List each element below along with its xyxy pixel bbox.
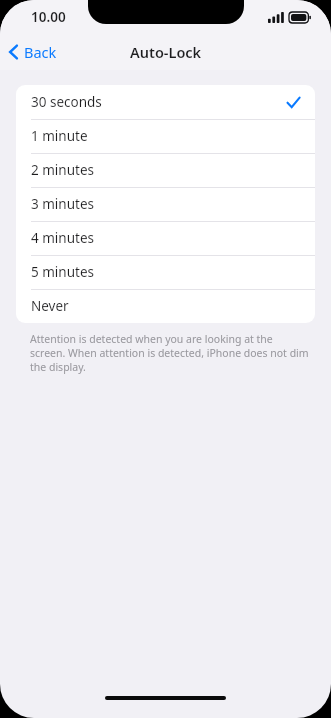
staticText: Back <box>24 42 57 62</box>
button[interactable]: 3 minutes <box>16 187 315 221</box>
button[interactable]: 2 minutes <box>16 153 315 187</box>
staticText: 30 seconds <box>31 93 102 111</box>
staticText: 10.00 <box>31 8 66 26</box>
staticText: Attention is detected when you are looki… <box>30 332 309 374</box>
button[interactable]: 4 minutes <box>16 221 315 255</box>
button[interactable]: 5 minutes <box>16 255 315 289</box>
other: Cellular signal <box>268 12 284 23</box>
staticText: 2 minutes <box>31 161 94 179</box>
button[interactable]: Never <box>16 289 315 323</box>
staticText: 1 minute <box>31 127 88 145</box>
button[interactable]: 1 minute <box>16 119 315 153</box>
staticText: 5 minutes <box>31 263 94 281</box>
staticText: 4 minutes <box>31 229 94 247</box>
staticText: Never <box>31 297 69 315</box>
button[interactable]: Back <box>0 38 67 66</box>
button[interactable]: 30 seconds <box>16 85 315 119</box>
other: Battery <box>289 12 311 23</box>
staticText: 3 minutes <box>31 195 94 213</box>
staticText: Auto-Lock <box>130 42 202 62</box>
